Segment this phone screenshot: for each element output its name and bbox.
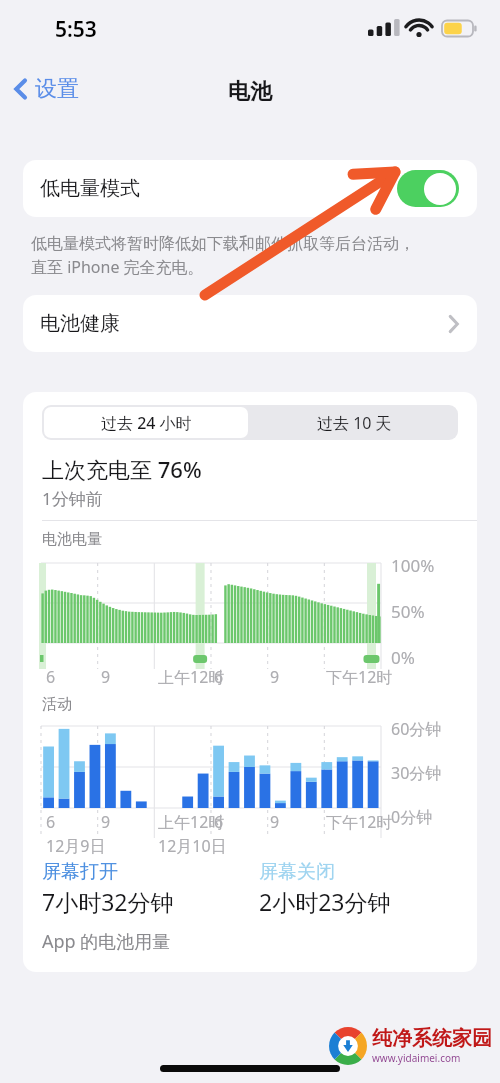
staticText: 30分钟	[391, 762, 442, 784]
staticText: 7小时32分钟	[42, 886, 174, 917]
staticText: 12月10日	[158, 835, 227, 857]
staticText: 电池	[228, 78, 272, 106]
staticText: 纯净系统家园	[372, 1026, 492, 1051]
staticText: 设置	[35, 75, 79, 103]
staticText: 活动	[42, 695, 72, 714]
staticText: 电池电量	[42, 530, 102, 549]
button[interactable]: 低电量模式	[23, 160, 477, 217]
staticText: 屏幕打开	[42, 860, 118, 884]
staticText: 6	[46, 666, 56, 688]
button[interactable]: 过去 10 天	[250, 405, 458, 440]
staticText: 9	[101, 811, 111, 833]
staticText: 上午12时	[158, 666, 225, 688]
staticText: 0%	[391, 646, 415, 669]
button[interactable]: 设置	[8, 72, 83, 106]
staticText: 5:53	[55, 15, 97, 44]
staticText: 低电量模式将暂时降低如下载和邮件抓取等后台活动， 直至 iPhone 完全充电。	[31, 234, 415, 278]
staticText: 过去 10 天	[317, 412, 392, 434]
staticText: 9	[270, 666, 280, 688]
staticText: 上午12时	[158, 811, 225, 833]
staticText: 50%	[391, 600, 425, 623]
staticText: 6	[214, 666, 224, 688]
staticText: 100%	[391, 554, 435, 577]
staticText: 低电量模式	[40, 176, 140, 201]
staticText: 过去 24 小时	[101, 412, 192, 434]
staticText: 屏幕关闭	[259, 860, 335, 884]
button[interactable]: 过去 24 小时	[44, 407, 248, 438]
staticText: 0分钟	[391, 806, 433, 828]
staticText: App 的电池用量	[42, 929, 171, 954]
staticText: 12月9日	[46, 835, 106, 857]
staticText: 上次充电至 76%	[42, 454, 202, 484]
staticText: 6	[46, 811, 56, 833]
staticText: 下午12时	[326, 666, 393, 688]
staticText: 9	[270, 811, 280, 833]
staticText: 9	[101, 666, 111, 688]
button[interactable]: 低电量模式开关	[397, 170, 459, 207]
staticText: 6	[214, 811, 224, 833]
staticText: 60分钟	[391, 718, 442, 740]
staticText: 电池健康	[40, 311, 120, 336]
button[interactable]: 电池健康	[23, 295, 477, 352]
staticText: www.yidaimei.com	[372, 1051, 461, 1065]
staticText: 1分钟前	[42, 487, 103, 510]
staticText: 下午12时	[326, 811, 393, 833]
staticText: 2小时23分钟	[259, 886, 391, 917]
